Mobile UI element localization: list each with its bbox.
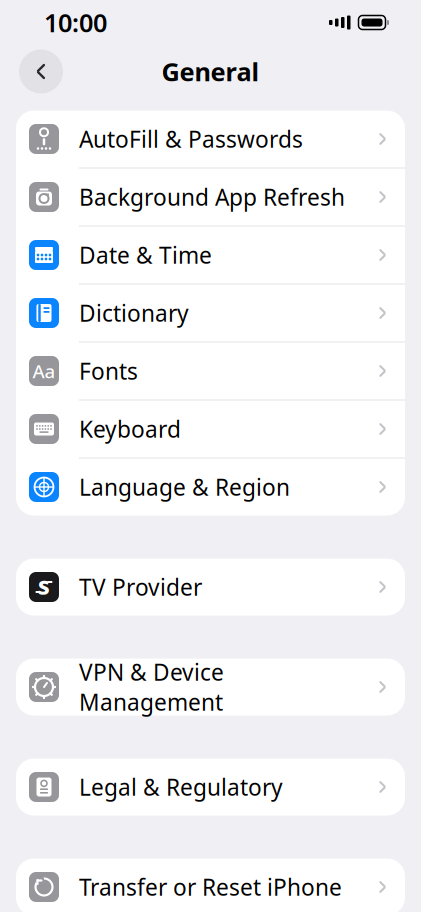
staticText: AutoFill & Passwords (79, 124, 303, 154)
button[interactable]: Date & Time (16, 226, 405, 283)
staticText: Dictionary (79, 298, 189, 328)
staticText: Legal & Regulatory (79, 772, 283, 802)
staticText: S (38, 574, 50, 600)
button[interactable]: Back (19, 49, 63, 93)
button[interactable]: Background App Refresh (16, 168, 405, 225)
button[interactable]: Legal & Regulatory (16, 758, 405, 815)
button[interactable]: Language & Region (16, 458, 405, 515)
staticText: Transfer or Reset iPhone (79, 872, 342, 902)
button[interactable]: VPN & Device Management (16, 658, 405, 715)
staticText: Fonts (79, 356, 138, 386)
button[interactable]: AutoFill & Passwords (16, 110, 405, 167)
staticText: Aa (32, 359, 55, 383)
staticText: Background App Refresh (79, 182, 345, 212)
staticText: General (161, 55, 259, 88)
button[interactable]: Dictionary (16, 284, 405, 341)
button[interactable]: Aa (16, 342, 405, 399)
staticText: Keyboard (79, 414, 181, 444)
staticText: Language & Region (79, 472, 290, 502)
staticText: TV Provider (79, 572, 202, 602)
staticText: Date & Time (79, 240, 212, 270)
button[interactable]: S (16, 558, 405, 615)
button[interactable]: Transfer or Reset iPhone (16, 858, 405, 912)
staticText: VPN & Device Management (79, 657, 224, 717)
button[interactable]: Keyboard (16, 400, 405, 457)
staticText: 10:00 (44, 6, 107, 39)
